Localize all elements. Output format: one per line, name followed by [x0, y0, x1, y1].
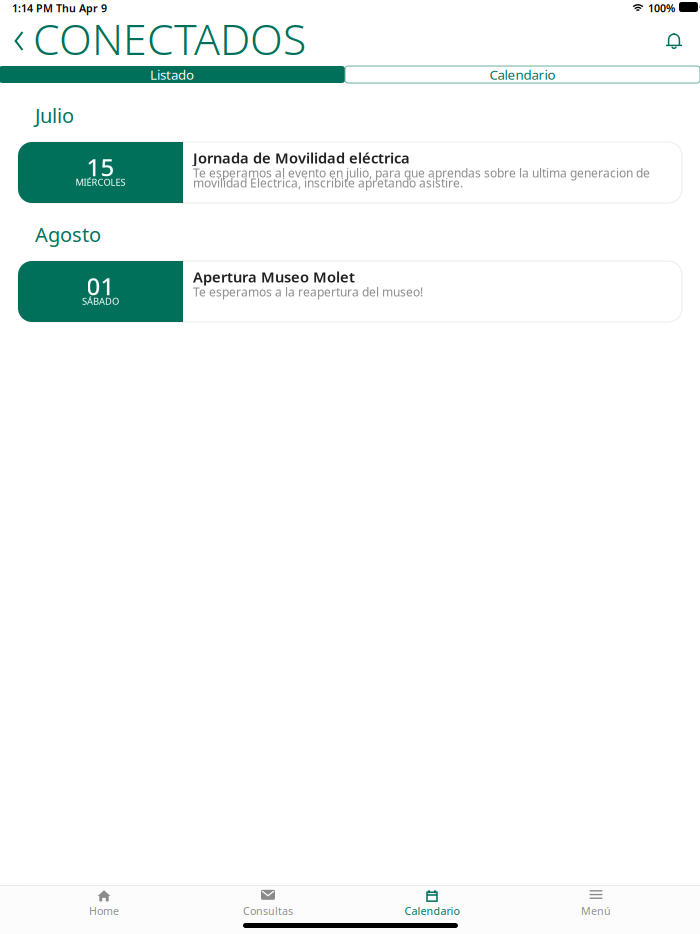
staticText: 01 [86, 270, 114, 302]
staticText: MIÉRCOLES [75, 176, 125, 188]
staticText: Jornada de Movilidad eléctrica [193, 148, 410, 167]
staticText: Consultas [243, 904, 293, 918]
staticText: Apertura Museo Molet [193, 267, 355, 286]
staticText: Thu Apr 9 [56, 1, 107, 15]
staticText: 1:14 PM [12, 1, 53, 15]
staticText: Julio [35, 102, 74, 129]
button[interactable]: Consultas [186, 886, 350, 920]
staticText: SÁBADO [82, 295, 119, 307]
button[interactable]: Home [22, 886, 186, 920]
staticText: Agosto [35, 221, 101, 248]
staticText: CONECTADOS [33, 10, 306, 67]
staticText: movilidad Electrica, inscribite apretand… [193, 175, 463, 191]
staticText: Te esperamos a la reapertura del museo! [193, 284, 423, 300]
staticText: Calendario [404, 904, 459, 918]
staticText: Listado [150, 66, 194, 83]
button[interactable]: Calendario [345, 66, 700, 83]
button[interactable]: 15 [18, 142, 682, 203]
button[interactable]: Back [5, 24, 33, 58]
button[interactable]: Notifications [657, 24, 691, 58]
staticText: 15 [86, 151, 114, 183]
button[interactable]: Menú [514, 886, 678, 920]
button[interactable]: 01 [18, 261, 682, 322]
button[interactable]: Listado [0, 66, 345, 83]
staticText: Calendario [489, 66, 555, 83]
staticText: 100% [648, 1, 675, 15]
staticText: Te esperamos al evento en julio, para qu… [193, 165, 650, 181]
staticText: Home [89, 904, 119, 918]
button[interactable]: Calendario [350, 886, 514, 920]
staticText: Menú [581, 904, 611, 918]
